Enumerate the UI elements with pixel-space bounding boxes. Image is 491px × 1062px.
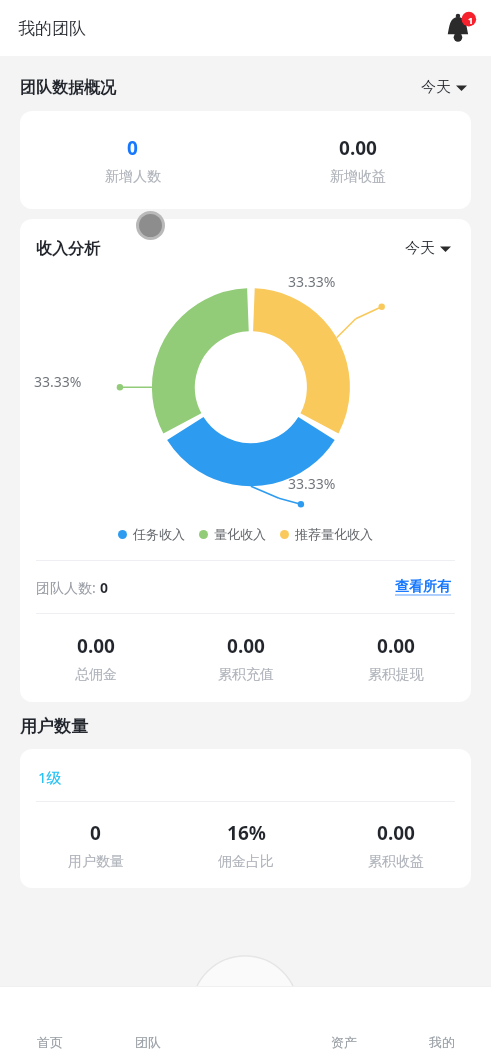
staticText: 0.00: [339, 135, 377, 161]
staticText: 累积收益: [368, 853, 424, 871]
button[interactable]: 0.00: [171, 633, 321, 684]
staticText: 16%: [227, 820, 266, 846]
staticText: 今天: [421, 78, 451, 97]
button[interactable]: 今天: [417, 74, 471, 101]
staticText: 0.00: [377, 820, 415, 846]
staticText: 0.00: [377, 633, 415, 659]
staticText: 1: [468, 14, 474, 26]
staticText: 用户数量: [68, 853, 124, 871]
staticText: 累积提现: [368, 666, 424, 684]
staticText: 累积充值: [218, 666, 274, 684]
staticText: 查看所有: [395, 578, 451, 596]
button[interactable]: 0.00: [321, 633, 471, 684]
staticText: 0: [100, 578, 109, 597]
button[interactable]: 0: [20, 820, 171, 871]
button[interactable]: 0.00: [20, 633, 171, 684]
button[interactable]: 0.00: [321, 820, 471, 871]
staticText: 量化收入: [214, 526, 266, 542]
button[interactable]: 16%: [171, 820, 321, 871]
button[interactable]: 任务收入: [118, 526, 185, 542]
staticText: 33.33%: [288, 474, 336, 493]
staticText: 团队人数:: [36, 578, 100, 597]
staticText: 团队数据概况: [20, 78, 116, 98]
button[interactable]: 团队: [99, 986, 197, 1050]
staticText: 33.33%: [288, 272, 336, 291]
staticText: 0.00: [77, 633, 115, 659]
button[interactable]: 量化收入: [199, 526, 266, 542]
button[interactable]: 推荐量化收入: [280, 526, 373, 542]
staticText: 0.00: [227, 633, 265, 659]
button[interactable]: 资产: [295, 986, 393, 1050]
staticText: 总佣金: [75, 666, 117, 684]
staticText: 首页: [37, 1034, 63, 1050]
staticText: 1级: [38, 767, 62, 787]
staticText: 团队: [135, 1034, 161, 1050]
button[interactable]: 查看所有: [391, 574, 455, 600]
button[interactable]: 0: [20, 135, 245, 186]
staticText: 推荐量化收入: [295, 526, 373, 542]
staticText: 收入分析: [36, 239, 100, 259]
staticText: 我的: [429, 1034, 455, 1050]
staticText: 任务收入: [133, 526, 185, 542]
button[interactable]: 今天: [401, 235, 455, 262]
staticText: 我的团队: [18, 18, 86, 39]
staticText: 佣金占比: [218, 853, 274, 871]
staticText: 33.33%: [34, 372, 82, 391]
button[interactable]: 0.00: [245, 135, 471, 186]
button[interactable]: Notifications: [443, 11, 477, 45]
button[interactable]: 首页: [0, 986, 99, 1050]
button[interactable]: 我的: [393, 986, 491, 1050]
staticText: 用户数量: [20, 716, 88, 737]
staticText: 资产: [331, 1034, 357, 1050]
staticText: 新增人数: [105, 168, 161, 186]
staticText: 0: [127, 135, 138, 161]
staticText: 0: [90, 820, 101, 846]
staticText: 新增收益: [330, 168, 386, 186]
staticText: 今天: [405, 239, 435, 258]
